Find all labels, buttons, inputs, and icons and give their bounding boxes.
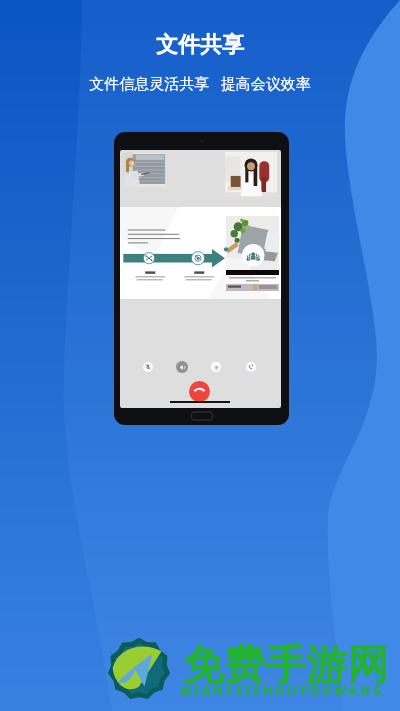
button[interactable]: End call [189,381,210,402]
button[interactable]: Add call [246,362,256,372]
staticText: 免费手游网 [183,640,388,692]
staticText: MIANFEISHOUYOUWANG [180,682,385,698]
staticText: 文件共享 [156,31,244,59]
button[interactable]: Keypad [211,362,221,372]
staticText: 文件信息灵活共享 提高会议效率 [89,73,311,93]
button[interactable]: Speaker [176,361,188,373]
button[interactable]: Mute microphone [143,362,153,372]
